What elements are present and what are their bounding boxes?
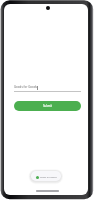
button[interactable]: Submit xyxy=(14,101,81,111)
staticText: Submit xyxy=(43,104,52,108)
staticText: Goods for Goods xyxy=(40,176,57,179)
button[interactable]: Goods for Goods xyxy=(14,85,81,92)
staticText: Goods for Goods xyxy=(14,85,37,89)
button[interactable]: Goods for Goods xyxy=(31,171,61,181)
